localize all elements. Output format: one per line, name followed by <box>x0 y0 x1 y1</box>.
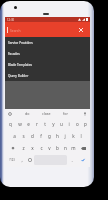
staticText: a <box>13 133 16 139</box>
button[interactable]: n <box>61 142 69 154</box>
button[interactable]: b <box>53 142 61 154</box>
staticText: ?123 <box>9 158 15 162</box>
button[interactable]: m <box>69 142 77 154</box>
button[interactable]: e <box>24 118 33 130</box>
staticText: l <box>80 133 82 139</box>
button[interactable]: Enter <box>76 155 89 165</box>
staticText: Query Builder <box>8 74 29 78</box>
staticText: z <box>22 145 25 151</box>
staticText: do <box>25 111 30 116</box>
staticText: Service Providers <box>8 41 33 45</box>
staticText: k <box>72 133 75 139</box>
button[interactable]: i <box>65 118 73 130</box>
button[interactable]: Service Providers <box>5 37 90 48</box>
button[interactable]: q <box>6 118 15 130</box>
staticText: x <box>31 145 34 151</box>
button[interactable]: p <box>81 118 89 130</box>
button[interactable]: Query Builder <box>5 70 90 81</box>
staticText: n <box>64 145 67 151</box>
button[interactable]: o <box>73 118 81 130</box>
button[interactable]: t <box>41 118 49 130</box>
button[interactable]: c <box>37 142 45 154</box>
button[interactable]: Keyboard settings <box>8 112 12 116</box>
button[interactable]: z <box>19 142 28 154</box>
button[interactable]: a <box>10 130 19 142</box>
staticText: g <box>48 133 51 139</box>
staticText: i <box>68 121 70 127</box>
staticText: o <box>76 121 79 127</box>
staticText: p <box>84 121 87 127</box>
staticText: t <box>44 121 46 127</box>
button[interactable]: j <box>61 130 69 142</box>
staticText: 12:30 <box>7 18 15 22</box>
button[interactable]: ?123 <box>6 155 18 165</box>
staticText: q <box>9 121 12 127</box>
staticText: u <box>60 121 63 127</box>
button[interactable]: d <box>28 130 37 142</box>
button[interactable]: u <box>57 118 65 130</box>
staticText: w <box>18 121 22 127</box>
staticText: d <box>31 133 34 139</box>
staticText: h <box>56 133 59 139</box>
staticText: c <box>40 145 43 151</box>
staticText: f <box>40 133 42 139</box>
staticText: close <box>42 111 51 116</box>
button[interactable]: g <box>45 130 53 142</box>
button[interactable]: x <box>28 142 37 154</box>
button[interactable]: Close search <box>75 24 86 35</box>
staticText: for <box>63 111 68 116</box>
button[interactable]: h <box>53 130 61 142</box>
button[interactable]: . <box>68 155 75 165</box>
button[interactable]: Backspace <box>77 142 89 154</box>
staticText: Search <box>10 28 21 32</box>
staticText: y <box>52 121 55 127</box>
staticText: . <box>71 157 73 163</box>
staticText: s <box>22 133 25 139</box>
staticText: m <box>71 145 76 151</box>
button[interactable]: w <box>15 118 24 130</box>
staticText: r <box>36 121 38 127</box>
button[interactable]: Facades <box>5 48 90 59</box>
button[interactable]: Emoji <box>26 155 33 165</box>
button[interactable]: s <box>19 130 28 142</box>
staticText: Facades <box>8 52 20 56</box>
button[interactable]: , <box>19 155 25 165</box>
button[interactable]: Voice input <box>83 112 87 116</box>
staticText: b <box>56 145 59 151</box>
button[interactable]: k <box>69 130 77 142</box>
button[interactable]: r <box>33 118 41 130</box>
button[interactable]: Shift <box>6 142 19 154</box>
staticText: , <box>21 157 23 163</box>
button[interactable]: f <box>37 130 45 142</box>
staticText: v <box>48 145 51 151</box>
button[interactable]: y <box>49 118 57 130</box>
button[interactable]: l <box>77 130 85 142</box>
button[interactable]: Blade Templates <box>5 59 90 70</box>
staticText: j <box>64 133 66 139</box>
button[interactable]: v <box>45 142 53 154</box>
staticText: e <box>27 121 30 127</box>
staticText: Blade Templates <box>8 63 32 67</box>
